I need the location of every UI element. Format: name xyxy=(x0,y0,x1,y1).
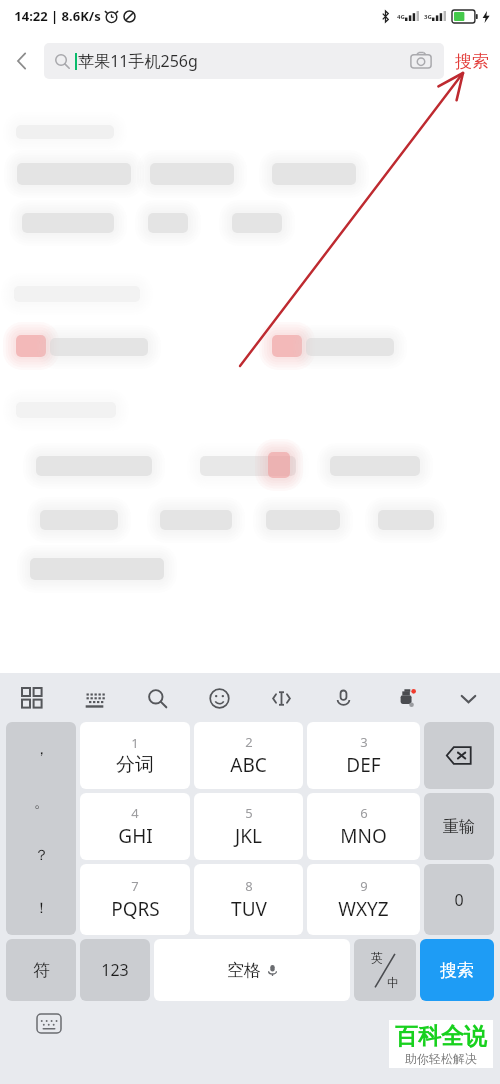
staticText: GHI xyxy=(118,823,153,849)
staticText: 1 xyxy=(131,734,139,752)
staticText: 8 xyxy=(245,877,253,895)
staticText: 搜索 xyxy=(455,51,489,72)
button[interactable]: Clipboard xyxy=(386,678,426,718)
staticText: 5 xyxy=(245,804,253,822)
staticText: 英 xyxy=(371,950,383,965)
staticText: WXYZ xyxy=(338,896,389,922)
button[interactable]: 7 xyxy=(80,864,190,935)
staticText: 百科全说 xyxy=(395,1022,487,1051)
staticText: 6 xyxy=(360,804,368,822)
staticText: 0 xyxy=(454,889,464,911)
button[interactable]: 0 xyxy=(424,864,494,935)
button[interactable]: Keyboard layout xyxy=(74,678,114,718)
staticText: TUV xyxy=(231,896,267,922)
button[interactable]: Collapse keyboard xyxy=(448,678,488,718)
staticText: 空格 xyxy=(227,960,261,981)
staticText: 中 xyxy=(387,975,399,990)
button[interactable]: 9 xyxy=(307,864,420,935)
button[interactable]: Search xyxy=(137,678,177,718)
staticText: JKL xyxy=(235,823,262,849)
staticText: ？ xyxy=(34,846,49,865)
staticText: 分词 xyxy=(116,753,154,777)
staticText: PQRS xyxy=(111,896,160,922)
button[interactable]: 2 xyxy=(194,722,303,789)
staticText: DEF xyxy=(346,752,381,778)
button[interactable]: Backspace xyxy=(424,722,494,789)
button[interactable]: 4 xyxy=(80,793,190,860)
staticText: 2 xyxy=(245,733,253,751)
staticText: ！ xyxy=(34,899,49,918)
staticText: 123 xyxy=(101,959,129,981)
button[interactable]: 搜索 xyxy=(455,32,489,90)
staticText: 符 xyxy=(33,960,50,981)
staticText: 4G xyxy=(397,13,405,21)
button[interactable]: 5 xyxy=(194,793,303,860)
button[interactable]: ？ xyxy=(6,829,76,882)
button[interactable]: 6 xyxy=(307,793,420,860)
staticText: ， xyxy=(34,740,49,759)
button[interactable]: Emoji xyxy=(199,678,239,718)
button[interactable]: English Chinese toggle xyxy=(354,939,416,1001)
staticText: MNO xyxy=(340,823,387,849)
button[interactable]: 1 xyxy=(80,722,190,789)
staticText: 9 xyxy=(360,877,368,895)
button[interactable]: Apps xyxy=(12,678,52,718)
button[interactable]: ， xyxy=(6,722,76,776)
button[interactable]: 。 xyxy=(6,776,76,829)
staticText: 。 xyxy=(34,793,49,812)
button[interactable]: 空格 xyxy=(154,939,350,1001)
button[interactable]: ！ xyxy=(6,882,76,935)
staticText: ABC xyxy=(230,752,267,778)
button[interactable]: Edit text xyxy=(261,678,301,718)
button[interactable]: 123 xyxy=(80,939,150,1001)
staticText: 7 xyxy=(131,877,139,895)
staticText: 3G xyxy=(424,13,432,21)
button[interactable]: 符 xyxy=(6,939,76,1001)
staticText: 14:22 | 8.6K/s xyxy=(14,7,101,25)
button[interactable]: Voice input xyxy=(323,678,363,718)
staticText: 3 xyxy=(360,733,368,751)
button[interactable]: Hide keyboard xyxy=(34,1011,64,1035)
button[interactable]: 搜索 xyxy=(420,939,494,1001)
staticText: 苹果11手机256g xyxy=(78,50,198,72)
staticText: 重输 xyxy=(443,817,475,837)
button[interactable]: Camera search xyxy=(408,48,434,74)
button[interactable]: 3 xyxy=(307,722,420,789)
staticText: 搜索 xyxy=(440,960,474,981)
button[interactable]: 重输 xyxy=(424,793,494,860)
button[interactable]: 苹果11手机256g xyxy=(44,43,444,79)
button[interactable]: Back xyxy=(0,32,44,90)
staticText: 助你轻松解决 xyxy=(405,1051,477,1066)
staticText: 4 xyxy=(131,804,139,822)
button[interactable]: 8 xyxy=(194,864,303,935)
